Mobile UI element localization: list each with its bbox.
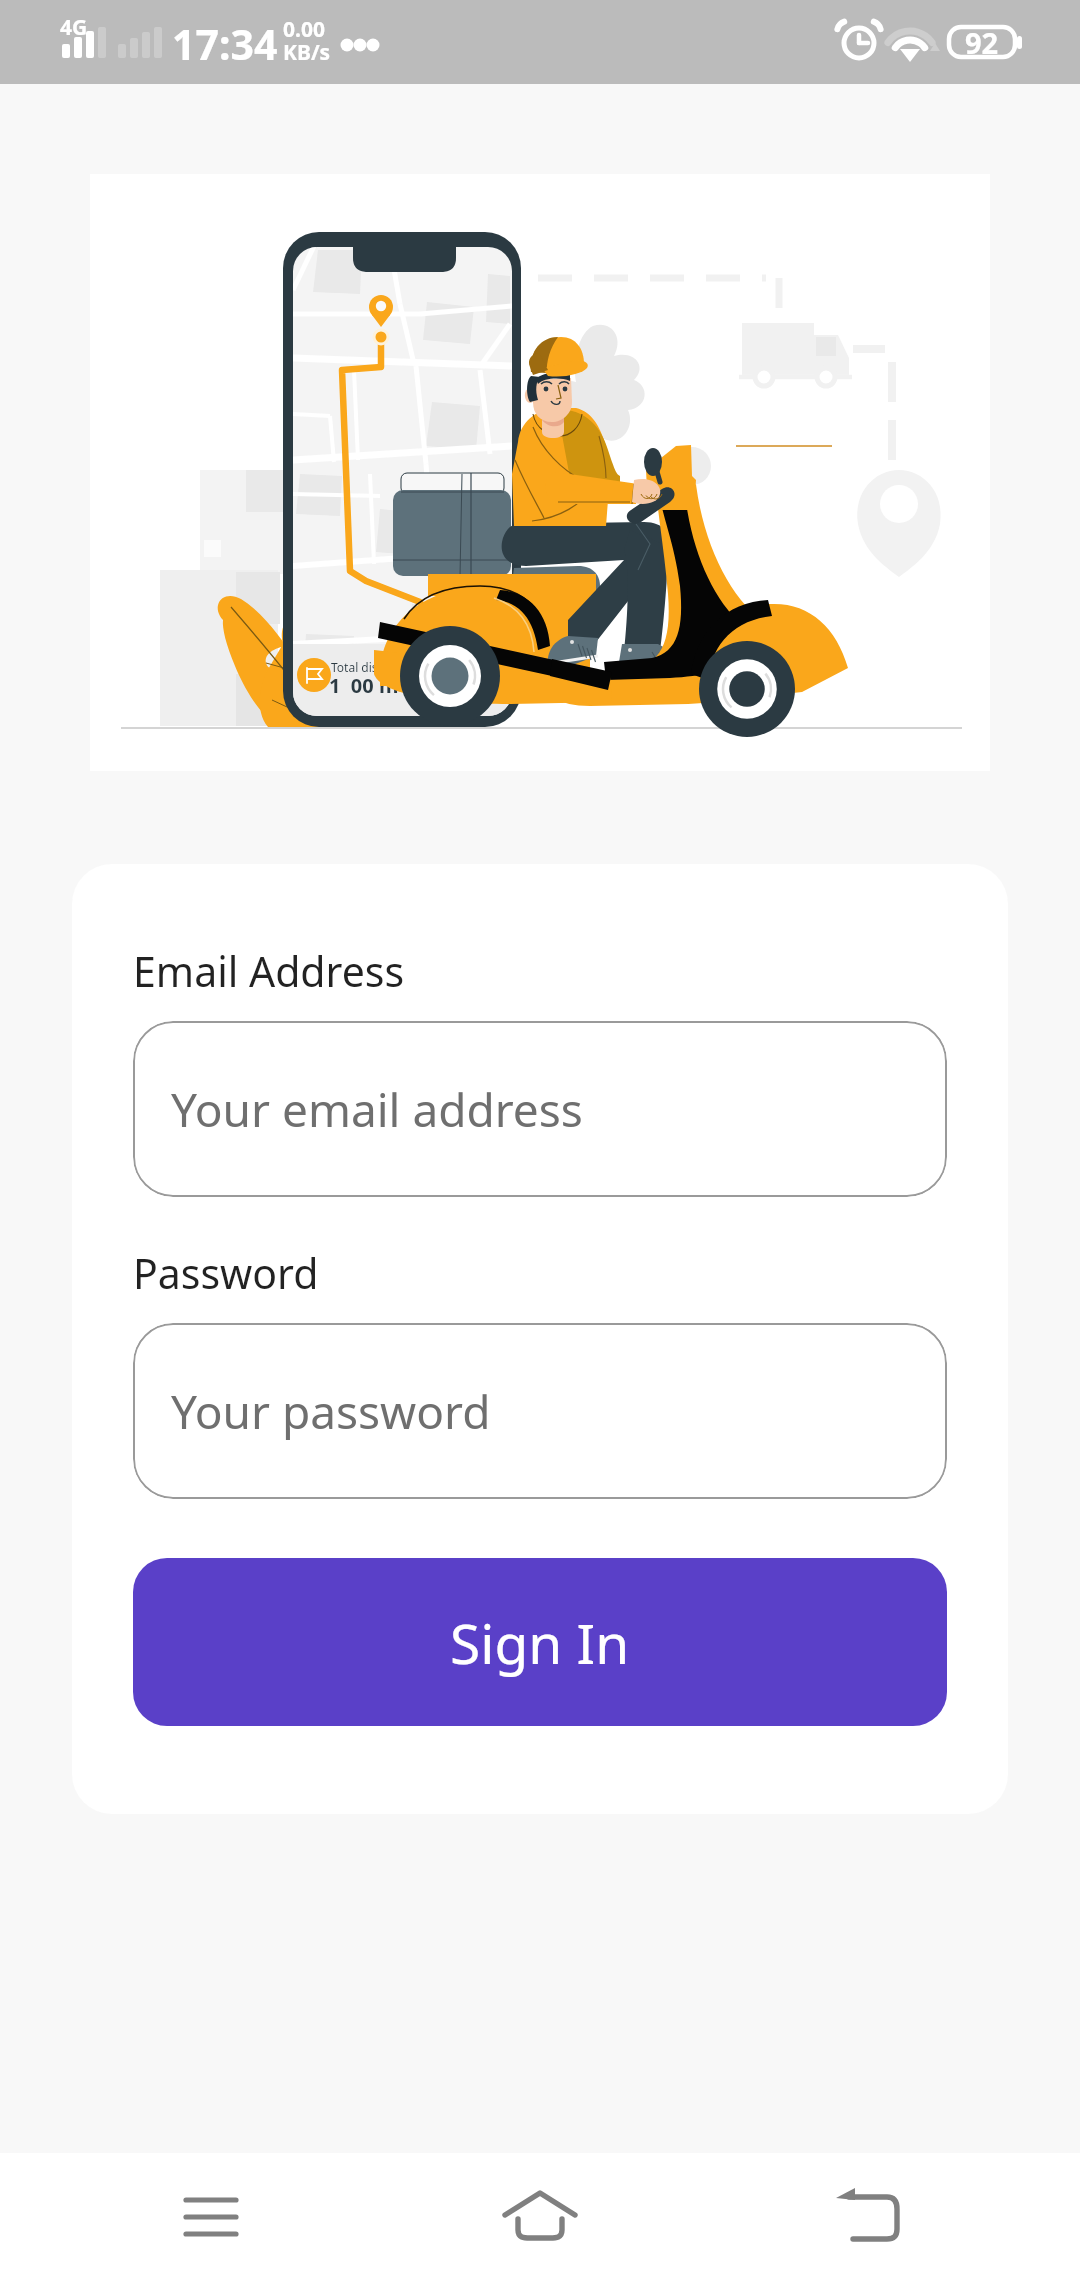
button[interactable]: Your email address bbox=[133, 1021, 947, 1197]
staticText: 4G bbox=[60, 13, 88, 42]
button[interactable]: Sign In bbox=[133, 1558, 947, 1726]
button[interactable]: Back bbox=[720, 2153, 1080, 2280]
staticText: KB/s bbox=[283, 38, 331, 67]
staticText: Your password bbox=[171, 1380, 491, 1443]
staticText: Email Address bbox=[133, 943, 405, 999]
staticText: 0.00 bbox=[283, 15, 325, 44]
button[interactable]: Your password bbox=[133, 1323, 947, 1499]
staticText: Sign In bbox=[450, 1605, 630, 1680]
button[interactable]: Recent apps bbox=[0, 2153, 360, 2280]
staticText: 17:34 bbox=[172, 16, 278, 72]
staticText: 92 bbox=[965, 23, 999, 62]
staticText: Your email address bbox=[171, 1078, 583, 1141]
staticText: Password bbox=[133, 1245, 319, 1301]
button[interactable]: Home bbox=[360, 2153, 720, 2280]
